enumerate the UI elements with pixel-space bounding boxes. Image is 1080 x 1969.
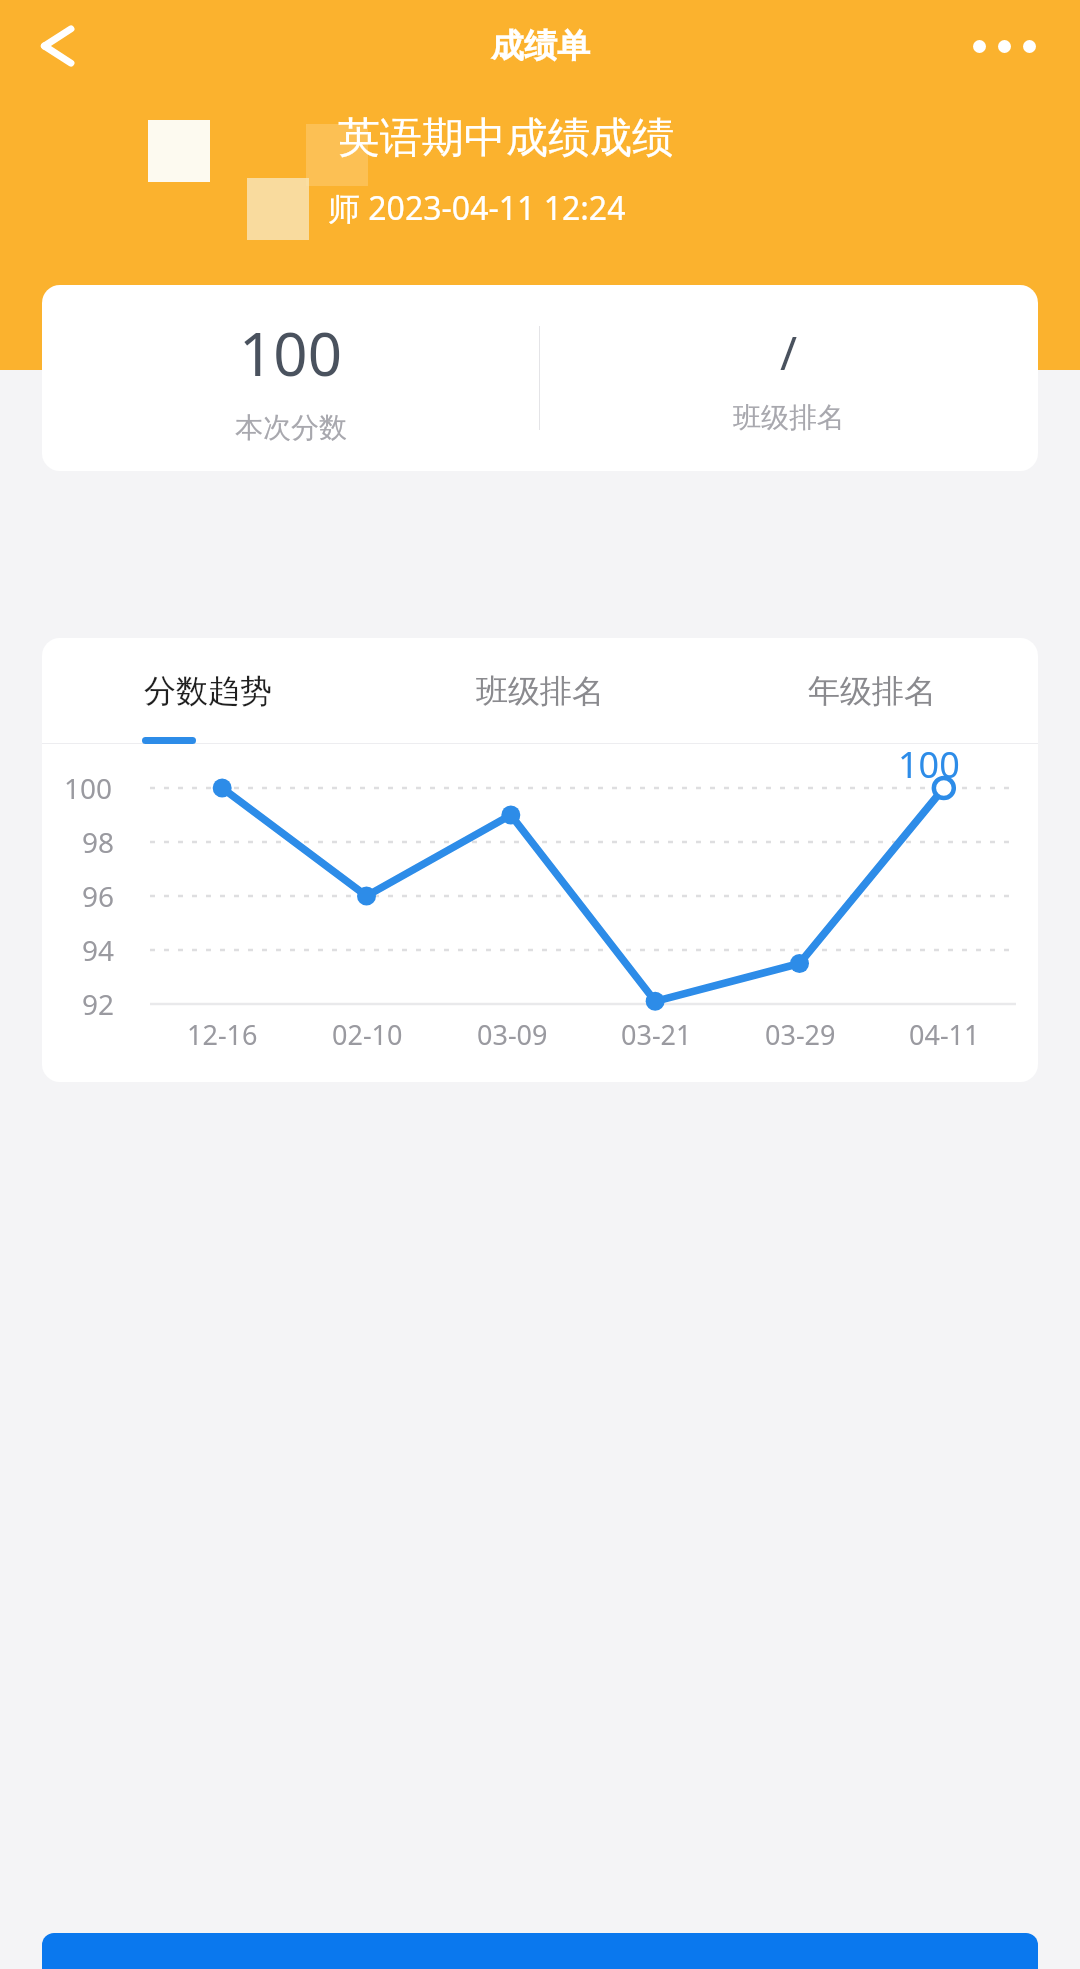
staticText: 成绩单 [491,25,590,67]
staticText: 94 [82,931,115,969]
staticText: 班级排名 [476,671,604,711]
staticText: 98 [82,823,115,861]
staticText: 04-11 [909,1016,980,1053]
staticText: / [780,321,798,384]
staticText: 100 [64,769,113,807]
staticText: 100 [898,740,960,789]
button[interactable]: 班级排名 [374,638,706,744]
button[interactable]: / [540,285,1038,471]
button[interactable]: Back [14,7,92,85]
staticText: 分数趋势 [144,671,272,711]
staticText: 96 [82,877,115,915]
button[interactable]: 分数趋势 [42,638,374,744]
staticText: 班级排名 [733,400,845,435]
staticText: 师 2023-04-11 12:24 [328,186,626,230]
button[interactable]: 100 [42,285,539,471]
staticText: 12-16 [187,1016,258,1053]
button[interactable]: 年级排名 [706,638,1038,744]
button[interactable]: Primary action [42,1933,1038,1969]
staticText: 年级排名 [808,671,936,711]
staticText: 03-21 [621,1016,692,1053]
staticText: 本次分数 [235,410,347,445]
staticText: 02-10 [332,1016,403,1053]
button[interactable]: More options [952,14,1056,78]
staticText: 100 [239,312,342,394]
staticText: 03-09 [477,1016,548,1053]
staticText: 03-29 [765,1016,836,1053]
staticText: 英语期中成绩成绩 [338,112,674,165]
staticText: 92 [82,985,115,1023]
